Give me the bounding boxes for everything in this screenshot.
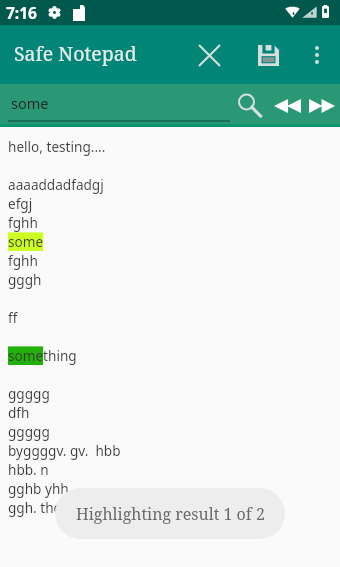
button[interactable]: Save — [248, 35, 288, 75]
staticText: Highlighting result 1 of 2 — [76, 503, 265, 525]
staticText: Safe Notepad — [14, 40, 137, 67]
button[interactable]: Search — [233, 84, 266, 127]
button[interactable]: Close — [189, 35, 229, 75]
staticText: hello, testing.... aaaaddadfadgj efgj fg… — [8, 137, 332, 517]
button[interactable]: Previous result — [271, 84, 304, 127]
button[interactable]: More options — [299, 37, 335, 73]
staticText: some — [11, 93, 49, 113]
staticText: 7:16 — [6, 2, 37, 23]
button[interactable]: Next result — [305, 84, 338, 127]
